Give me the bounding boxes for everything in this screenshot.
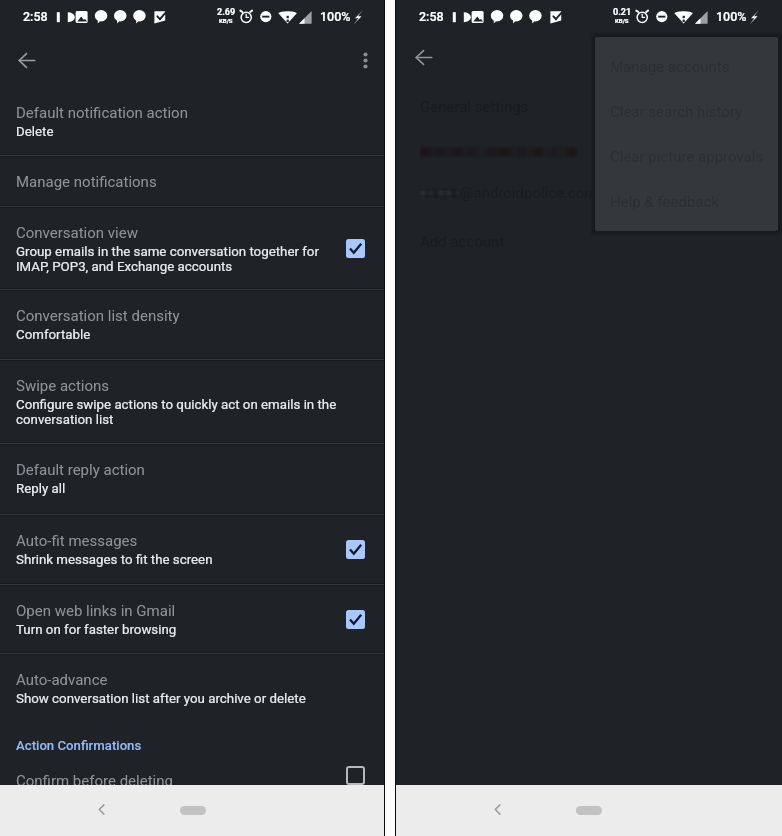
staticText: Help & feedback xyxy=(610,193,719,211)
staticText: Auto-fit messages xyxy=(16,531,138,550)
button[interactable]: Auto-advance xyxy=(0,653,385,718)
staticText: Confirm before deleting xyxy=(16,771,173,785)
staticText: Clear picture approvals xyxy=(610,148,764,166)
staticText: Default notification action xyxy=(16,103,188,122)
staticText: Comfortable xyxy=(16,327,91,342)
button[interactable]: Home xyxy=(180,806,206,815)
button[interactable]: Default reply action xyxy=(0,443,385,514)
button[interactable]: Navigate up xyxy=(6,40,46,80)
staticText: 100% xyxy=(716,9,747,24)
staticText: Manage notifications xyxy=(16,172,157,191)
button[interactable]: Conversation list density xyxy=(0,289,385,359)
staticText: 0.21 xyxy=(613,7,632,18)
staticText: Clear search history xyxy=(610,103,743,121)
button[interactable]: Manage notifications xyxy=(0,155,385,206)
staticText: Open web links in Gmail xyxy=(16,601,176,620)
button[interactable]: Swipe actions xyxy=(0,359,385,443)
staticText: Conversation list density xyxy=(16,306,180,325)
button[interactable]: Auto-fit messages xyxy=(344,538,366,560)
button[interactable]: General settings xyxy=(396,83,782,125)
staticText: 100% xyxy=(320,9,351,24)
button[interactable] xyxy=(396,133,782,173)
staticText: Swipe actions xyxy=(16,376,110,395)
button[interactable]: Navigate up xyxy=(403,37,443,77)
button[interactable]: Confirm before deleting xyxy=(0,752,385,785)
staticText: Configure swipe actions to quickly act o… xyxy=(16,397,337,427)
staticText: Group emails in the same conversation to… xyxy=(16,244,319,274)
staticText: Conversation view xyxy=(16,223,138,242)
button[interactable]: Open web links in Gmail xyxy=(344,608,366,630)
staticText: KB/S xyxy=(615,17,629,24)
staticText: 2:58 xyxy=(419,9,444,24)
staticText: Auto-advance xyxy=(16,670,108,689)
button[interactable]: Conversation view xyxy=(0,206,385,289)
button[interactable]: Add account xyxy=(396,218,782,260)
button[interactable]: Default notification action xyxy=(0,86,385,155)
button[interactable]: Back xyxy=(485,797,509,821)
button[interactable]: Home xyxy=(576,806,602,815)
staticText: Action Confirmations xyxy=(16,738,142,752)
staticText: Shrink messages to fit the screen xyxy=(16,552,213,567)
button[interactable]: @androidpolice.com xyxy=(396,173,782,213)
button[interactable]: Auto-fit messages xyxy=(0,514,385,584)
staticText: @androidpolice.com xyxy=(460,184,598,202)
staticText: Turn on for faster browsing xyxy=(16,622,177,637)
button[interactable]: Action Confirmations xyxy=(0,718,385,752)
button[interactable]: Back xyxy=(89,797,113,821)
button[interactable]: Open web links in Gmail xyxy=(0,584,385,653)
staticText: 2.69 xyxy=(217,7,236,18)
staticText: 2:58 xyxy=(23,9,48,24)
button[interactable]: Conversation view xyxy=(344,237,366,259)
staticText: Delete xyxy=(16,124,54,139)
staticText: Reply all xyxy=(16,481,66,496)
staticText: KB/S xyxy=(219,17,233,24)
staticText: Default reply action xyxy=(16,460,145,479)
staticText: Show conversation list after you archive… xyxy=(16,691,306,706)
staticText: Manage accounts xyxy=(610,58,730,76)
button[interactable]: More options xyxy=(345,40,385,80)
